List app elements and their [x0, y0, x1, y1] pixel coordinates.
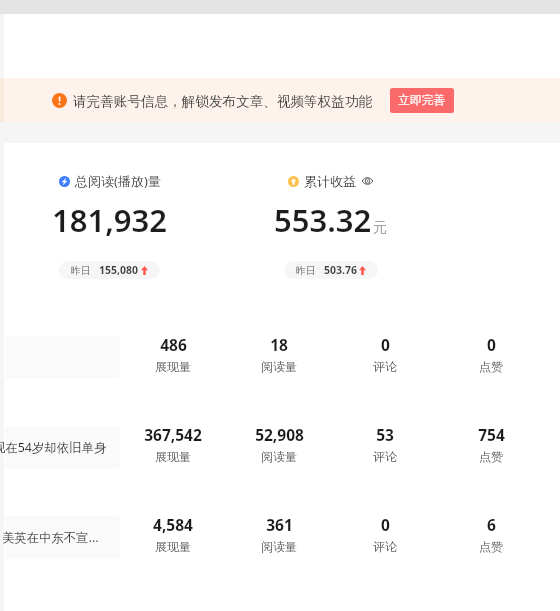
button[interactable]: 昨日 — [284, 261, 378, 279]
staticText: 展现量 — [155, 539, 191, 554]
staticText: 阅读量 — [261, 359, 297, 374]
button[interactable]: 昨日 — [59, 261, 160, 279]
staticText: 累计收益 — [304, 173, 356, 189]
button[interactable]: 累计收益 — [221, 143, 440, 279]
staticText: 0 — [381, 334, 390, 355]
button[interactable]: 美英在中东不宣… — [0, 516, 560, 606]
staticText: 181,932 — [52, 199, 168, 240]
button[interactable]: 请完善账号信息，解锁发布文章、视频等权益功能 — [4, 78, 560, 122]
button[interactable]: 总阅读(播放)量 — [0, 143, 219, 279]
staticText: 155,080 — [99, 263, 139, 277]
button[interactable]: 现在54岁却依旧单身 — [0, 426, 560, 516]
staticText: 评论 — [373, 359, 397, 374]
staticText: 总阅读(播放)量 — [75, 172, 161, 190]
staticText: 52,908 — [255, 424, 304, 445]
staticText: 367,542 — [144, 424, 202, 445]
staticText: 立即完善 — [398, 93, 446, 108]
staticText: 0 — [487, 334, 496, 355]
staticText: 486 — [160, 334, 187, 355]
button[interactable]: 486 — [0, 336, 560, 426]
staticText: 阅读量 — [261, 539, 297, 554]
button[interactable]: 立即完善 — [390, 88, 454, 113]
staticText: 展现量 — [155, 449, 191, 464]
staticText: 6 — [487, 514, 496, 535]
staticText: 361 — [266, 514, 293, 535]
staticText: 754 — [478, 424, 505, 445]
staticText: 阅读量 — [261, 449, 297, 464]
staticText: 请完善账号信息，解锁发布文章、视频等权益功能 — [73, 93, 373, 110]
staticText: 元 — [373, 219, 387, 237]
staticText: 点赞 — [479, 539, 503, 554]
staticText: 评论 — [373, 449, 397, 464]
staticText: 点赞 — [479, 449, 503, 464]
staticText: 4,584 — [153, 514, 193, 535]
staticText: 美英在中东不宣… — [2, 529, 99, 546]
staticText: 点赞 — [479, 359, 503, 374]
staticText: 评论 — [373, 539, 397, 554]
staticText: 18 — [270, 334, 288, 355]
staticText: 昨日 — [71, 264, 91, 277]
staticText: 0 — [381, 514, 390, 535]
staticText: 展现量 — [155, 359, 191, 374]
staticText: 现在54岁却依旧单身 — [0, 439, 107, 456]
staticText: 503.76 — [324, 263, 357, 277]
other: Toggle earnings visibility — [362, 176, 373, 186]
staticText: 昨日 — [296, 264, 316, 277]
staticText: 553.32 — [274, 199, 372, 240]
staticText: 53 — [376, 424, 394, 445]
